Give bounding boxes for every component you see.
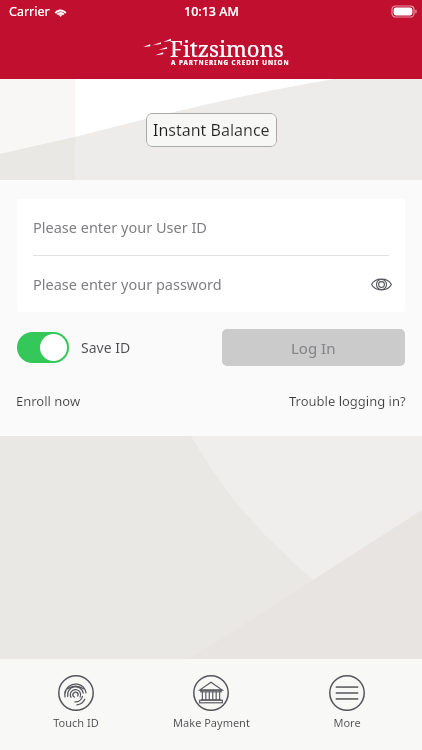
button[interactable]: Log In [222, 329, 405, 366]
staticText: Touch ID [53, 715, 99, 730]
staticText: 10:13 AM [184, 3, 239, 20]
staticText: More [333, 715, 361, 730]
staticText: Enroll now [16, 392, 81, 410]
staticText: Please enter your User ID [33, 217, 207, 237]
button[interactable]: Make Payment [151, 659, 271, 750]
staticText: Please enter your password [33, 274, 222, 294]
staticText: Fitzsimons [170, 33, 284, 63]
staticText: Instant Balance [153, 119, 270, 141]
staticText: Log In [291, 338, 336, 358]
button[interactable]: Trouble logging in? [289, 392, 406, 410]
button[interactable]: Instant Balance [146, 113, 277, 147]
button[interactable]: Please enter your password [17, 256, 405, 312]
staticText: Trouble logging in? [289, 392, 406, 410]
staticText: Make Payment [173, 715, 250, 730]
button[interactable]: More [287, 659, 407, 750]
button[interactable]: Save ID [17, 332, 131, 363]
button[interactable]: Please enter your User ID [17, 199, 405, 255]
button[interactable]: Touch ID [16, 659, 136, 750]
button[interactable]: Enroll now [16, 392, 81, 410]
staticText: Carrier [9, 3, 50, 20]
staticText: A PARTNERING CREDIT UNION [171, 58, 290, 67]
staticText: Save ID [81, 338, 131, 357]
button[interactable]: Show password [365, 268, 397, 300]
